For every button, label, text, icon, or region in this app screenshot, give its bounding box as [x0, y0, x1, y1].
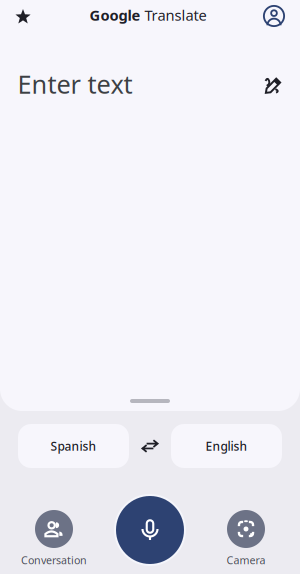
staticText: Enter text [17, 67, 132, 101]
button[interactable]: Conversation [0, 494, 108, 574]
staticText: Conversation [21, 553, 87, 567]
button[interactable]: Handwriting [256, 71, 282, 97]
button[interactable]: Spanish [18, 424, 129, 468]
staticText: English [205, 438, 247, 454]
button[interactable]: Voice input [116, 494, 184, 574]
button[interactable]: Saved [0, 0, 44, 30]
button[interactable]: Account [252, 0, 300, 30]
staticText: Spanish [50, 438, 96, 454]
staticText: Translate [140, 5, 206, 25]
staticText: Google [89, 5, 140, 25]
button[interactable]: Camera [192, 494, 300, 574]
button[interactable]: English [171, 424, 282, 468]
button[interactable]: Swap languages [129, 424, 171, 468]
staticText: Camera [226, 553, 265, 567]
